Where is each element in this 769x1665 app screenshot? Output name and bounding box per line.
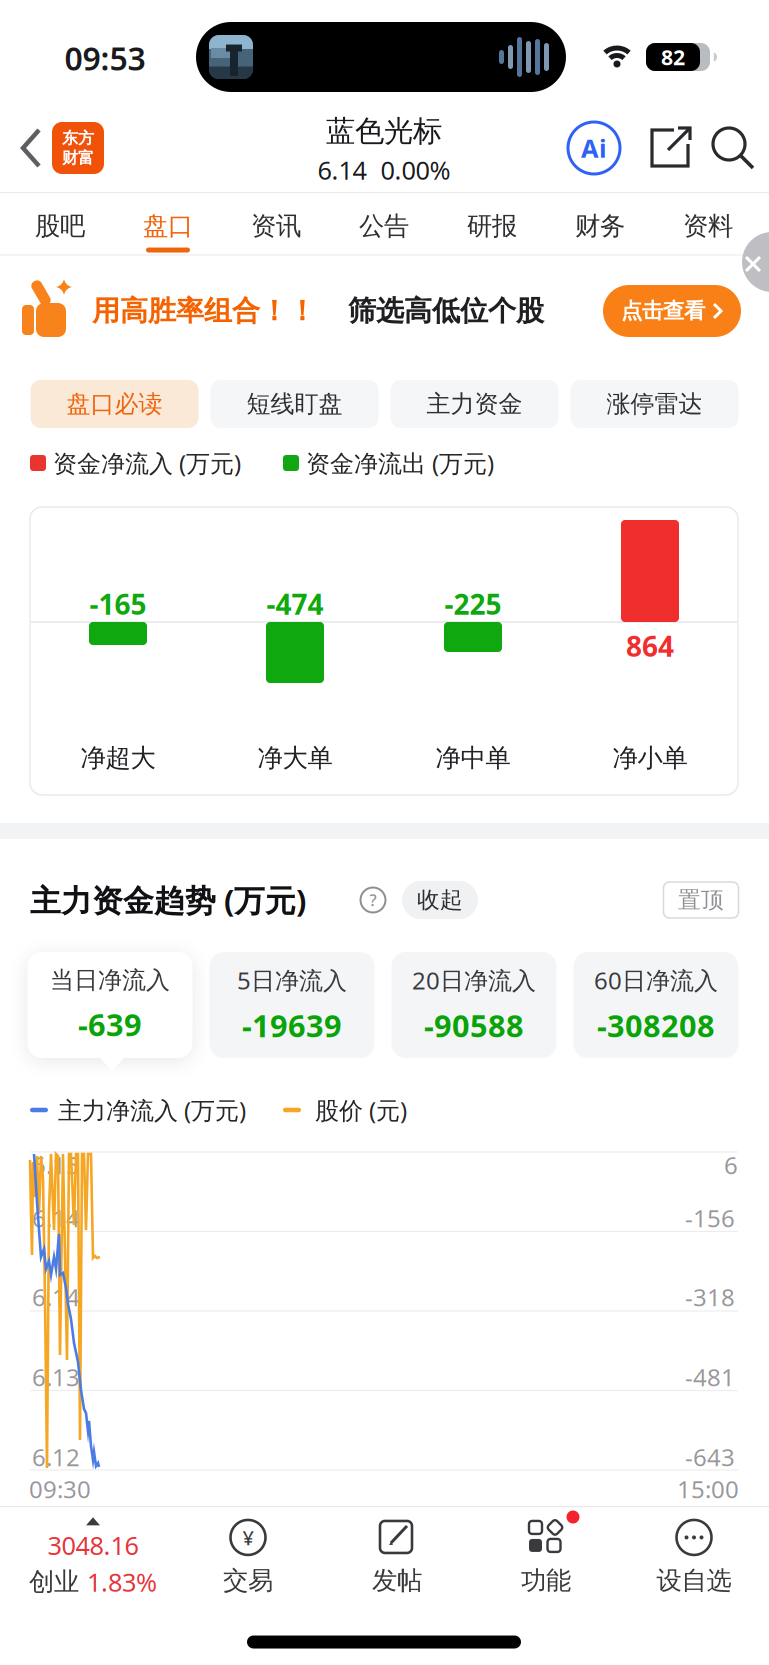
staticText: 资金净流出 (万元) [306, 447, 494, 479]
staticText: 收起 [417, 886, 463, 914]
staticText: 财务 [575, 210, 625, 241]
staticText: ? [369, 889, 376, 911]
staticText: 6.14 [32, 1281, 80, 1313]
staticText: 点击查看 [621, 298, 705, 324]
staticText: 盘口必读 [66, 389, 162, 419]
staticText: 主力资金 [426, 389, 522, 419]
button[interactable]: 收起 [402, 881, 478, 919]
staticText: -225 [444, 585, 501, 623]
staticText: 股价 (元) [315, 1094, 407, 1126]
staticText: -474 [266, 585, 323, 623]
staticText: 5日净流入 [237, 964, 347, 996]
staticText: 6.14 [32, 1202, 80, 1234]
button[interactable]: 主力资金 [390, 380, 558, 428]
staticText: 短线盯盘 [246, 389, 342, 419]
staticText: ¥ [242, 1524, 253, 1551]
staticText: 资金净流入 (万元) [53, 447, 241, 479]
button[interactable]: 股吧 [10, 201, 110, 251]
staticText: 筛选高低位个股 [348, 294, 544, 328]
staticText: -308208 [597, 1005, 715, 1046]
button[interactable]: Back [17, 126, 45, 170]
staticText: 设自选 [656, 1565, 731, 1596]
button[interactable]: Share [648, 126, 692, 170]
staticText: 3048.16 [47, 1528, 138, 1562]
button[interactable]: 涨停雷达 [570, 380, 738, 428]
staticText: 创业 [29, 1566, 79, 1597]
staticText: 6.13 [32, 1361, 80, 1393]
staticText: 当日净流入 [50, 965, 170, 995]
button[interactable]: 公告 [334, 201, 434, 251]
staticText: 60日净流入 [594, 964, 718, 996]
button[interactable]: 设自选 [624, 1514, 764, 1602]
button[interactable]: 发帖 [337, 1514, 457, 1602]
staticText: 资料 [683, 210, 733, 241]
staticText: -156 [685, 1202, 735, 1234]
staticText: 净小单 [612, 742, 687, 773]
button[interactable]: Close banner [726, 250, 769, 294]
button[interactable]: 东方财富 [52, 122, 104, 174]
button[interactable]: 资讯 [226, 201, 326, 251]
staticText: 交易 [223, 1565, 273, 1596]
staticText: -165 [89, 585, 146, 623]
staticText: 功能 [521, 1565, 571, 1596]
staticText: 主力资金趋势 (万元) [30, 880, 306, 920]
button[interactable]: 用高胜率组合！！ [0, 256, 769, 366]
staticText: -318 [685, 1281, 735, 1313]
staticText: 20日净流入 [412, 964, 536, 996]
staticText: 主力净流入 (万元) [58, 1094, 246, 1126]
button[interactable]: 5日净流入 [209, 952, 374, 1058]
button[interactable]: 当日净流入 [27, 952, 192, 1058]
staticText: 财富 [62, 148, 94, 168]
staticText: 资讯 [251, 210, 301, 241]
staticText: 09:30 [29, 1473, 91, 1505]
staticText: 用高胜率组合！！ [92, 294, 316, 328]
button[interactable]: 帮助 [360, 887, 385, 912]
staticText: 净中单 [435, 742, 510, 773]
staticText: 1.83% [87, 1565, 157, 1599]
staticText: -90588 [424, 1005, 524, 1046]
button[interactable]: 研报 [442, 201, 542, 251]
button[interactable]: ¥ [188, 1514, 308, 1602]
staticText: 置顶 [678, 886, 724, 914]
staticText: 东方 [62, 128, 94, 148]
staticText: 6.14 0.00% [317, 153, 450, 187]
staticText: 09:53 [64, 37, 145, 79]
staticText: 蓝色光标 [326, 113, 442, 149]
button[interactable]: 短线盯盘 [210, 380, 378, 428]
staticText: -643 [685, 1441, 735, 1473]
staticText: 盘口 [143, 210, 193, 241]
button[interactable]: Ai 助手 [568, 122, 620, 174]
button[interactable]: 盘口必读 [30, 380, 198, 428]
button[interactable]: Search [711, 126, 755, 170]
staticText: -639 [78, 1004, 142, 1045]
staticText: Ai [581, 131, 607, 165]
button[interactable]: 置顶 [663, 882, 738, 918]
staticText: 82 [661, 43, 685, 71]
staticText: 研报 [467, 210, 517, 241]
button[interactable]: 60日净流入 [573, 952, 738, 1058]
staticText: 864 [626, 627, 674, 665]
button[interactable]: 功能 [486, 1514, 606, 1602]
button[interactable]: 3048.16 [8, 1514, 178, 1602]
staticText: 6.12 [32, 1441, 80, 1473]
staticText: 净大单 [257, 742, 332, 773]
staticText: 净超大 [80, 742, 155, 773]
staticText: -19639 [242, 1005, 342, 1046]
staticText: 公告 [359, 210, 409, 241]
staticText: 发帖 [372, 1565, 422, 1596]
button[interactable]: 资料 [658, 201, 758, 251]
staticText: 6.15 [32, 1149, 80, 1181]
button[interactable]: 财务 [550, 201, 650, 251]
button[interactable]: 盘口 [118, 201, 218, 251]
staticText: -481 [685, 1361, 735, 1393]
button[interactable]: 20日净流入 [391, 952, 556, 1058]
staticText: 6 [724, 1149, 738, 1181]
staticText: 股吧 [35, 210, 85, 241]
staticText: 15:00 [677, 1473, 739, 1505]
staticText: 涨停雷达 [606, 389, 702, 419]
